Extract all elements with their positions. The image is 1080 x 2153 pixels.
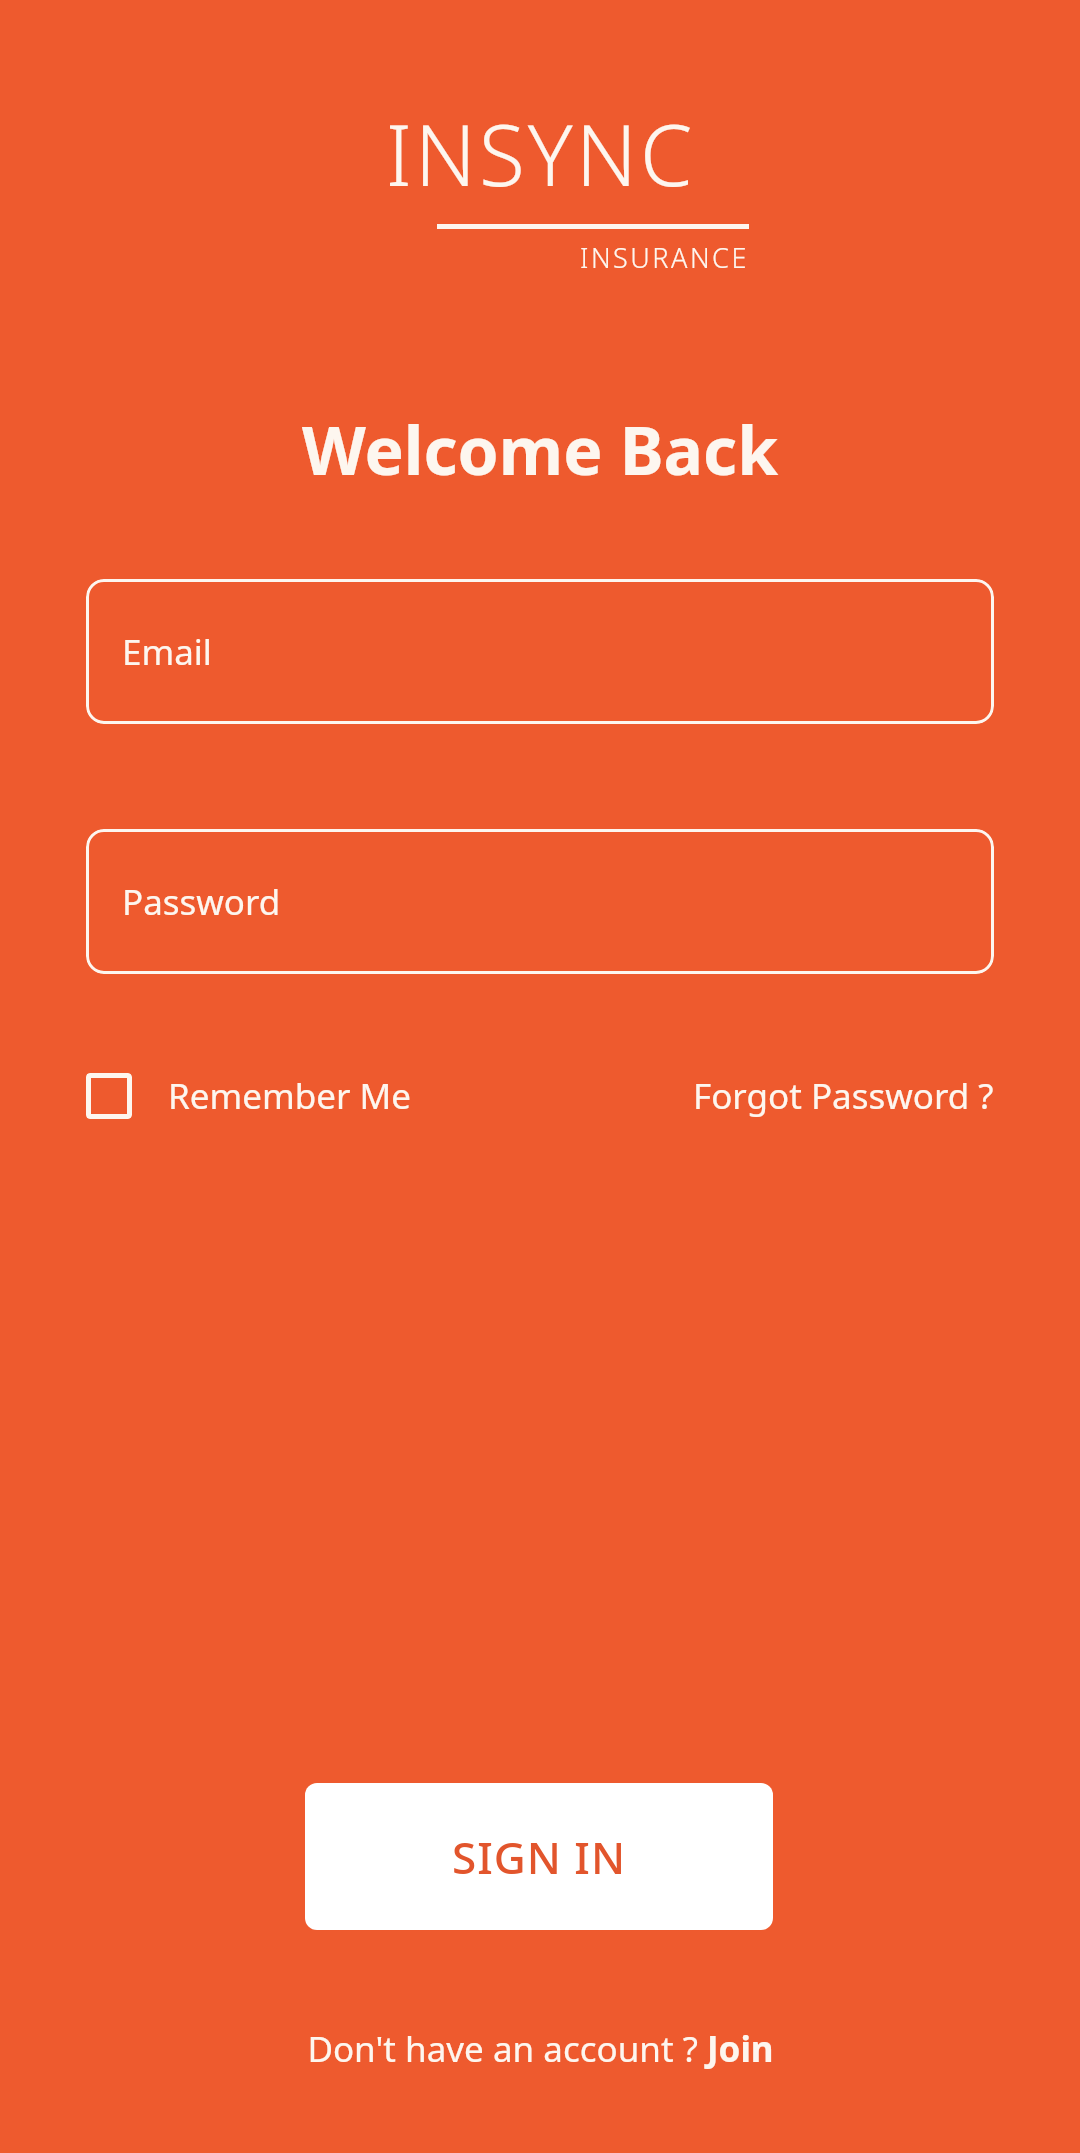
staticText: Forgot Password ? [693,1072,994,1120]
staticText: Password [122,878,281,926]
staticText: INSURANCE [580,239,749,276]
staticText: SIGN IN [452,1827,627,1887]
button[interactable]: Password [86,829,994,974]
staticText: Don't have an account ? Join [307,2025,774,2073]
button[interactable]: Email [86,579,994,724]
button[interactable]: SIGN IN [305,1783,773,1930]
staticText: INSYNC [332,96,749,210]
button[interactable]: Don't have an account ? Join [307,2025,774,2073]
button[interactable]: Forgot Password ? [693,1072,994,1120]
staticText: Remember Me [168,1072,412,1120]
staticText: Welcome Back [0,404,1080,494]
staticText: Email [122,628,212,676]
button[interactable]: Remember Me [86,1072,412,1120]
